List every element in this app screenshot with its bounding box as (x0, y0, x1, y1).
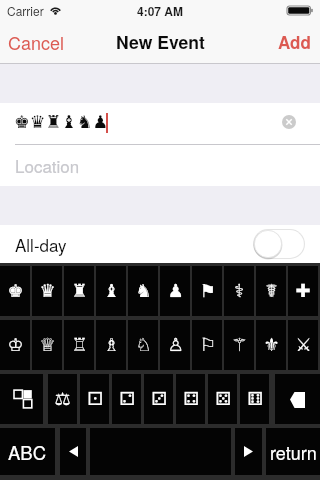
button[interactable]: ⚕ (224, 266, 254, 316)
staticText: ✚ (295, 280, 311, 301)
staticText: ⚀ (87, 388, 103, 409)
button[interactable]: ⚑ (192, 266, 222, 316)
staticText: ⚚ (231, 334, 248, 355)
button[interactable]: ⚁ (112, 374, 141, 424)
button[interactable]: ⚄ (208, 374, 237, 424)
staticText: ⚕ (234, 280, 244, 301)
staticText: ♚ (7, 280, 24, 301)
button[interactable]: ♚ (0, 266, 30, 316)
button[interactable]: ⚔ (288, 320, 318, 370)
button[interactable]: ⚚ (224, 320, 254, 370)
button[interactable]: Backspace (275, 374, 320, 424)
staticText: ♞ (135, 280, 152, 301)
button[interactable]: Previous (60, 428, 86, 475)
button[interactable]: ⚅ (240, 374, 269, 424)
staticText: ⚑ (199, 280, 216, 301)
button[interactable]: ♝ (96, 266, 126, 316)
button[interactable]: ABC (0, 428, 55, 475)
staticText: Add (278, 30, 311, 54)
button[interactable]: ✚ (288, 266, 318, 316)
staticText: New Event (116, 29, 205, 54)
staticText: ♗ (103, 334, 120, 355)
staticText: ⚐ (199, 334, 216, 355)
staticText: ♖ (71, 334, 88, 355)
button[interactable]: Shift (0, 374, 43, 424)
button[interactable]: ⚂ (144, 374, 173, 424)
staticText: ABC (8, 439, 47, 465)
button[interactable]: ♕ (32, 320, 62, 370)
staticText: ☤ (265, 280, 278, 301)
staticText: ♚♛♜♝♞♟ (14, 112, 109, 132)
button[interactable]: ♙ (160, 320, 190, 370)
button[interactable]: ♘ (128, 320, 158, 370)
button[interactable]: ⚜ (256, 320, 286, 370)
button[interactable]: ♟ (160, 266, 190, 316)
staticText: ⚃ (183, 388, 199, 409)
button[interactable]: Next (235, 428, 262, 475)
button[interactable]: ♗ (96, 320, 126, 370)
staticText: ♜ (71, 280, 88, 301)
staticText: ⚔ (295, 334, 312, 355)
staticText: ⚅ (247, 388, 263, 409)
button[interactable]: ♛ (32, 266, 62, 316)
staticText: Cancel (8, 29, 65, 55)
button[interactable]: ⚖ (48, 374, 77, 424)
staticText: ♔ (7, 334, 24, 355)
button[interactable]: ♜ (64, 266, 94, 316)
staticText: ⚖ (54, 388, 71, 409)
staticText: Carrier (7, 2, 44, 19)
staticText: ♛ (39, 280, 56, 301)
button[interactable]: Add (268, 20, 320, 63)
button[interactable]: Location (0, 144, 320, 186)
staticText: All-day (15, 232, 67, 256)
button[interactable]: ♞ (128, 266, 158, 316)
button[interactable]: return (266, 428, 320, 475)
button[interactable]: ♖ (64, 320, 94, 370)
button[interactable]: Clear text (282, 115, 296, 129)
staticText: ♟ (167, 280, 184, 301)
button[interactable]: ⚀ (80, 374, 109, 424)
staticText: ⚂ (151, 388, 167, 409)
staticText: return (270, 439, 317, 465)
staticText: ♘ (135, 334, 152, 355)
button[interactable]: Cancel (0, 20, 75, 63)
staticText: 4:07 AM (137, 2, 184, 19)
staticText: ♝ (103, 280, 120, 301)
button[interactable]: ♚♛♜♝♞♟ (0, 103, 320, 144)
button[interactable]: ♔ (0, 320, 30, 370)
staticText: ⚄ (215, 388, 231, 409)
button[interactable]: ⚐ (192, 320, 222, 370)
button[interactable]: ⚃ (176, 374, 205, 424)
staticText: ♙ (167, 334, 184, 355)
staticText: ♕ (39, 334, 56, 355)
staticText: ⚁ (119, 388, 135, 409)
button[interactable]: All-day off (253, 229, 305, 259)
staticText: ⚜ (263, 334, 280, 355)
staticText: Location (15, 153, 80, 177)
button[interactable]: ☤ (256, 266, 286, 316)
